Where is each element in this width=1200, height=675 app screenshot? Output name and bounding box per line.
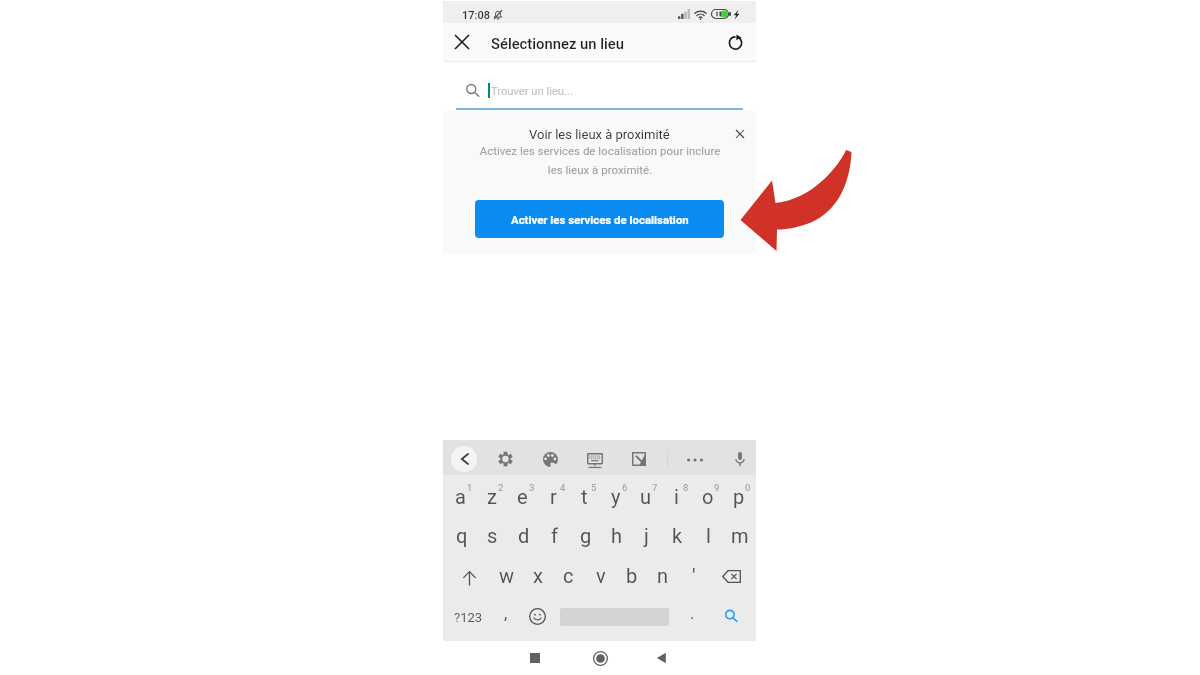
button[interactable]: r xyxy=(538,475,569,517)
button[interactable]: Retour xyxy=(651,647,673,669)
button[interactable]: Effacer xyxy=(715,556,747,597)
staticText: d xyxy=(518,524,530,547)
button[interactable]: q xyxy=(446,515,477,556)
button[interactable]: s xyxy=(477,515,508,556)
staticText: 0 xyxy=(745,482,751,493)
button[interactable]: Retour xyxy=(451,446,477,472)
staticText: i xyxy=(674,485,679,508)
staticText: Trouver un lieu... xyxy=(491,85,573,98)
staticText: 7 xyxy=(652,482,658,493)
button[interactable]: Emoji xyxy=(525,595,550,637)
staticText: . xyxy=(690,603,695,623)
staticText: u xyxy=(640,485,652,508)
button[interactable]: n xyxy=(647,555,678,596)
staticText: ' xyxy=(692,564,696,587)
staticText: q xyxy=(456,524,468,547)
button[interactable]: y xyxy=(600,475,631,517)
staticText: j xyxy=(644,524,649,547)
button[interactable]: m xyxy=(724,515,755,556)
button[interactable]: Majuscule xyxy=(453,555,483,596)
button[interactable]: u xyxy=(630,475,661,517)
button[interactable]: f xyxy=(539,515,570,556)
staticText: l xyxy=(706,524,711,547)
staticText: o xyxy=(702,485,714,508)
staticText: ?123 xyxy=(454,610,483,625)
staticText: w xyxy=(499,564,515,587)
staticText: p xyxy=(733,485,745,508)
staticText: s xyxy=(487,524,498,547)
button[interactable]: o xyxy=(692,475,723,517)
staticText: 5 xyxy=(591,482,597,493)
staticText: b xyxy=(626,564,638,587)
button[interactable]: h xyxy=(601,515,632,556)
staticText: 8 xyxy=(683,482,689,493)
button[interactable]: Clavier xyxy=(582,448,608,473)
button[interactable]: c xyxy=(553,555,584,596)
button[interactable]: b xyxy=(616,555,647,596)
staticText: v xyxy=(596,564,606,587)
button[interactable]: e xyxy=(507,475,538,517)
staticText: x xyxy=(533,564,543,587)
button[interactable]: ' xyxy=(678,555,709,596)
button[interactable]: j xyxy=(631,515,662,556)
button[interactable]: i xyxy=(661,475,692,517)
button[interactable]: Récents xyxy=(524,647,546,669)
button[interactable]: d xyxy=(508,515,539,556)
button[interactable]: k xyxy=(662,515,693,556)
button[interactable]: Rechercher xyxy=(718,595,744,637)
button[interactable]: Virgule xyxy=(494,595,518,637)
button[interactable]: Thèmes xyxy=(538,447,563,472)
staticText: h xyxy=(611,524,623,547)
staticText: g xyxy=(580,524,592,547)
button[interactable]: Point xyxy=(680,595,704,637)
button[interactable]: Fermer xyxy=(449,29,475,55)
staticText: , xyxy=(504,603,508,623)
staticText: f xyxy=(551,524,558,547)
staticText: r xyxy=(550,485,557,508)
button[interactable]: Micro xyxy=(729,446,751,472)
staticText: Sélectionnez un lieu xyxy=(491,35,624,52)
staticText: a xyxy=(455,485,466,508)
staticText: t xyxy=(581,485,588,508)
button[interactable]: x xyxy=(522,555,553,596)
button[interactable]: a xyxy=(445,475,476,517)
staticText: 6 xyxy=(622,482,628,493)
button[interactable]: t xyxy=(569,475,600,517)
staticText: 1 xyxy=(467,482,473,493)
staticText: n xyxy=(657,564,669,587)
staticText: c xyxy=(563,564,574,587)
staticText: 2 xyxy=(498,482,504,493)
button[interactable]: v xyxy=(585,555,616,596)
button[interactable]: z xyxy=(476,475,507,517)
staticText: e xyxy=(517,485,528,508)
staticText: 9 xyxy=(714,482,720,493)
button[interactable]: Actualiser xyxy=(723,29,749,55)
button[interactable]: w xyxy=(491,555,522,596)
staticText: Activer les services de localisation xyxy=(511,213,689,226)
button[interactable]: Symboles xyxy=(451,595,485,637)
button[interactable]: g xyxy=(570,515,601,556)
staticText: 4 xyxy=(560,482,566,493)
staticText: z xyxy=(487,485,497,508)
button[interactable]: l xyxy=(693,515,724,556)
button[interactable]: Ignorer xyxy=(728,122,752,146)
staticText: Activez les services de localisation pou… xyxy=(455,144,745,176)
button[interactable]: p xyxy=(723,475,754,517)
staticText: k xyxy=(672,524,683,547)
button[interactable]: Activer les services de localisation xyxy=(475,200,724,238)
button[interactable]: Paramètres xyxy=(493,446,518,472)
button[interactable]: Plus xyxy=(682,453,708,467)
staticText: m xyxy=(731,524,749,547)
button[interactable]: Accueil xyxy=(588,646,612,670)
staticText: y xyxy=(611,485,621,508)
staticText: 17:08 xyxy=(462,9,490,22)
button[interactable]: Redimensionner xyxy=(627,447,651,471)
staticText: Voir les lieux à proximité xyxy=(529,127,670,142)
staticText: 3 xyxy=(529,482,535,493)
